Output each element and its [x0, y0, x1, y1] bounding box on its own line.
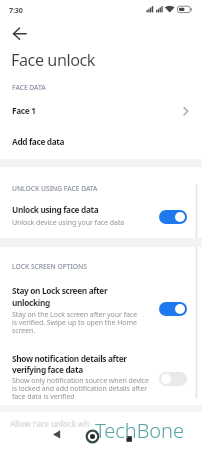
button[interactable] — [159, 210, 187, 224]
button[interactable] — [159, 302, 187, 316]
staticText: face data is verified — [12, 392, 75, 402]
staticText: Face unlock — [11, 49, 96, 71]
staticText: Stay on the Lock screen after your face — [12, 310, 138, 320]
button[interactable]: Stay on Lock screen after — [0, 281, 202, 333]
staticText: LOCK SCREEN OPTIONS — [12, 262, 87, 271]
staticText: Show only notification source when devic… — [12, 376, 149, 386]
staticText: Show notification details after — [12, 353, 127, 364]
staticText: is locked and add notification details a… — [12, 384, 148, 394]
staticText: screen. — [12, 326, 36, 336]
staticText: Unlock using face data — [12, 204, 99, 215]
staticText: verifying face data — [12, 364, 83, 375]
staticText: Allow Face unlock wh — [10, 418, 90, 429]
staticText: Add face data — [12, 136, 65, 147]
button[interactable] — [159, 372, 187, 386]
button[interactable] — [8, 25, 30, 43]
staticText: Stay on Lock screen after — [12, 285, 108, 296]
button[interactable]: Add face data — [0, 132, 202, 154]
staticText: FACE DATA — [12, 83, 46, 92]
staticText: UNLOCK USING FACE DATA — [12, 184, 98, 193]
staticText: TechBone — [95, 417, 185, 444]
staticText: is verified. Swipe up to open the Home — [12, 318, 137, 328]
staticText: unlocking — [12, 297, 50, 308]
staticText: Unlock device using your face data — [12, 218, 125, 228]
staticText: 7:30 — [9, 5, 23, 15]
staticText: Face 1 — [12, 105, 36, 116]
button[interactable]: Face 1 — [0, 101, 202, 123]
button[interactable]: Show notification details after — [0, 348, 202, 400]
button[interactable]: Unlock using face data — [0, 200, 202, 230]
